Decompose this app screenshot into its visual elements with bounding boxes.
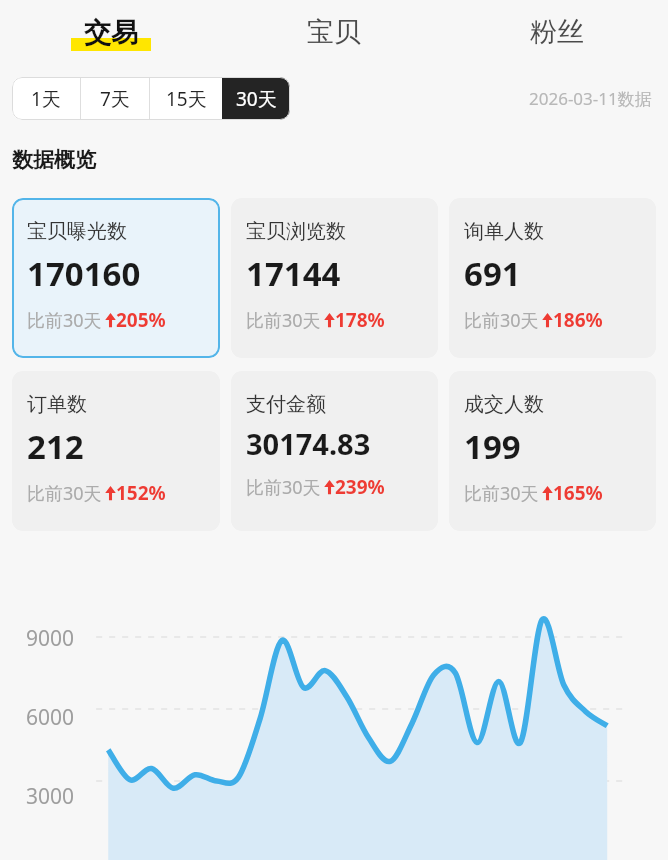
button[interactable]: 15天 <box>150 77 222 120</box>
staticText: 17144 <box>246 251 341 296</box>
staticText: 数据概览 <box>12 147 96 173</box>
staticText: 比前30天 <box>246 308 321 333</box>
staticText: 比前30天 <box>246 475 321 500</box>
button[interactable]: 支付金额 <box>231 371 438 531</box>
staticText: 宝贝曝光数 <box>27 219 127 244</box>
staticText: 178% <box>335 307 385 333</box>
staticText: 1天 <box>31 86 61 112</box>
staticText: 宝贝浏览数 <box>246 219 346 244</box>
button[interactable]: 成交人数 <box>449 371 656 531</box>
staticText: 粉丝 <box>530 15 584 49</box>
staticText: 9000 <box>26 624 75 653</box>
button[interactable]: 订单数 <box>12 371 220 531</box>
staticText: 成交人数 <box>464 392 544 417</box>
staticText: 170160 <box>27 251 141 296</box>
staticText: 205% <box>116 307 166 333</box>
staticText: 宝贝 <box>307 15 361 49</box>
staticText: 7天 <box>100 86 130 112</box>
staticText: 2026-03-11数据 <box>529 87 652 110</box>
button[interactable]: 粉丝 <box>445 0 668 64</box>
staticText: 30174.83 <box>246 424 371 463</box>
staticText: 3000 <box>26 782 75 811</box>
button[interactable]: 1天 <box>12 77 80 120</box>
staticText: 691 <box>464 251 521 296</box>
staticText: 订单数 <box>27 392 87 417</box>
staticText: 239% <box>335 474 385 500</box>
staticText: 165% <box>553 480 603 506</box>
button[interactable]: 交易 <box>0 0 222 64</box>
staticText: 186% <box>553 307 603 333</box>
staticText: 交易 <box>84 16 138 50</box>
staticText: 询单人数 <box>464 219 544 244</box>
button[interactable]: 30天 <box>222 77 290 120</box>
staticText: 比前30天 <box>27 308 102 333</box>
staticText: 6000 <box>26 703 75 732</box>
button[interactable]: 宝贝曝光数 <box>12 198 220 358</box>
button[interactable]: 询单人数 <box>449 198 656 358</box>
button[interactable]: 宝贝浏览数 <box>231 198 438 358</box>
button[interactable]: 宝贝 <box>222 0 445 64</box>
staticText: 支付金额 <box>246 392 326 417</box>
staticText: 比前30天 <box>27 481 102 506</box>
staticText: 152% <box>116 480 166 506</box>
staticText: 15天 <box>166 86 207 112</box>
staticText: 比前30天 <box>464 308 539 333</box>
staticText: 30天 <box>236 86 277 112</box>
staticText: 199 <box>464 424 521 469</box>
button[interactable]: 7天 <box>81 77 149 120</box>
staticText: 212 <box>27 424 84 469</box>
staticText: 比前30天 <box>464 481 539 506</box>
